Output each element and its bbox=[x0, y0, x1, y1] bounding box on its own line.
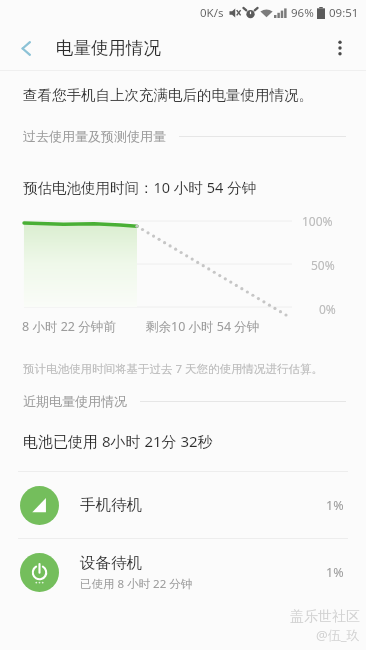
staticText: 1% bbox=[326, 564, 344, 581]
staticText: 过去使用量及预测使用量 bbox=[23, 128, 166, 144]
staticText: 电池已使用 8小时 21分 32秒 bbox=[23, 431, 213, 451]
staticText: 96% bbox=[291, 5, 314, 21]
button[interactable]: Back bbox=[6, 28, 46, 68]
staticText: 0% bbox=[319, 301, 336, 317]
staticText: 电量使用情况 bbox=[56, 37, 161, 59]
staticText: 近期电量使用情况 bbox=[23, 393, 127, 409]
staticText: 已使用 8 小时 22 分钟 bbox=[80, 576, 193, 592]
staticText: 预计电池使用时间将基于过去 7 天您的使用情况进行估算。 bbox=[23, 361, 324, 377]
staticText: 1% bbox=[326, 497, 344, 514]
button[interactable]: 手机待机 bbox=[0, 472, 366, 538]
staticText: 8 小时 22 分钟前 bbox=[22, 318, 116, 335]
staticText: 盖乐世社区 bbox=[290, 608, 360, 626]
staticText: 50% bbox=[311, 257, 335, 273]
staticText: 设备待机 bbox=[80, 553, 142, 573]
staticText: 预估电池使用时间：10 小时 54 分钟 bbox=[23, 177, 256, 197]
staticText: 09:51 bbox=[329, 5, 359, 21]
button[interactable]: More options bbox=[320, 28, 360, 68]
staticText: @伍_玖 bbox=[316, 626, 360, 644]
staticText: 查看您手机自上次充满电后的电量使用情况。 bbox=[23, 86, 313, 104]
staticText: 剩余10 小时 54 分钟 bbox=[146, 318, 260, 335]
staticText: 手机待机 bbox=[80, 495, 142, 515]
staticText: 0K/s bbox=[200, 5, 224, 21]
button[interactable]: 设备待机 bbox=[0, 539, 366, 605]
staticText: 100% bbox=[302, 213, 333, 229]
